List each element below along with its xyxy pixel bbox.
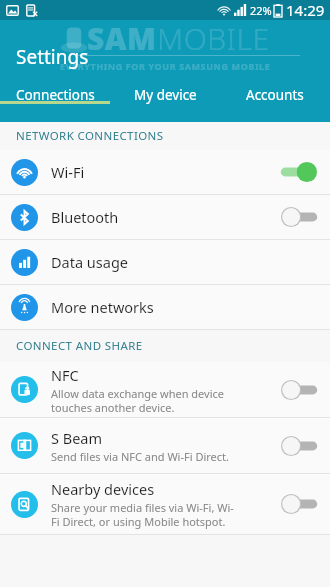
staticText: Bluetooth (51, 207, 119, 227)
staticText: Accounts (246, 86, 304, 104)
button[interactable]: Toggle off (280, 435, 318, 457)
staticText: NFC (51, 365, 79, 385)
staticText: NETWORK CONNECTIONS (16, 128, 164, 144)
button[interactable]: Wi-Fi (0, 150, 330, 194)
staticText: Connections (16, 86, 95, 104)
staticText: S Beam (51, 428, 103, 448)
button[interactable]: Bluetooth (0, 195, 330, 239)
staticText: Wi-Fi (51, 162, 85, 182)
button[interactable]: Connections (0, 86, 110, 104)
staticText: 14:29 (286, 0, 325, 20)
button[interactable]: More networks (0, 285, 330, 329)
button[interactable]: Data usage (0, 240, 330, 284)
staticText: Share your media files via Wi-Fi, Wi- Fi… (51, 500, 234, 529)
staticText: Allow data exchange when device touches … (51, 386, 225, 415)
staticText: My device (134, 86, 197, 104)
staticText: Send files via NFC and Wi-Fi Direct. (51, 449, 230, 464)
staticText: SAM (87, 18, 157, 59)
staticText: Settings (16, 44, 89, 70)
staticText: MOBILE (157, 18, 270, 59)
button[interactable]: My device (110, 86, 220, 104)
staticText: More networks (51, 297, 154, 317)
button[interactable]: Toggle on (280, 161, 318, 183)
button[interactable]: Toggle off (280, 493, 318, 515)
staticText: Data usage (51, 252, 128, 272)
staticText: CONNECT AND SHARE (16, 338, 143, 354)
button[interactable]: NFC (0, 362, 330, 417)
button[interactable]: Toggle off (280, 206, 318, 228)
staticText: EVERYTHING FOR YOUR SAMSUNG MOBILE (60, 60, 271, 72)
button[interactable]: Accounts (220, 86, 330, 104)
button[interactable]: Nearby devices (0, 474, 330, 534)
button[interactable]: S Beam (0, 418, 330, 473)
button[interactable]: Toggle off (280, 379, 318, 401)
staticText: 22% (250, 3, 272, 18)
staticText: Nearby devices (51, 479, 155, 499)
